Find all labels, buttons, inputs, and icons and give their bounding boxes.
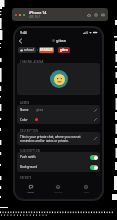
button[interactable]: Color: [17, 115, 100, 124]
staticText: 9:44: [20, 30, 27, 35]
button[interactable]: Chats: [17, 183, 44, 197]
staticText: gitea: [60, 48, 68, 52]
button[interactable]: gitea: [58, 47, 70, 53]
button[interactable]: Edit: [93, 108, 98, 113]
staticText: Color: [20, 118, 28, 122]
staticText: DEMO23: [40, 48, 53, 52]
staticText: Background: [20, 165, 38, 169]
button[interactable]: Screenshot: [101, 13, 105, 17]
staticText: Apps: [83, 190, 89, 193]
staticText: RECENTS: [20, 176, 32, 180]
button[interactable]: Rotate: [94, 13, 98, 17]
button[interactable]: Name: [17, 105, 100, 115]
staticText: iOS 16.1: [29, 15, 41, 19]
staticText: iPhone 14: [29, 10, 47, 15]
button[interactable]: Edit: [93, 136, 98, 141]
button[interactable]: Edit: [93, 117, 98, 122]
button[interactable]: Apps: [72, 183, 100, 197]
staticText: Chats: [27, 190, 34, 193]
button[interactable]: school: [18, 47, 36, 53]
staticText: Push notifs: [20, 155, 36, 159]
staticText: This is your private chat, where you can…: [20, 135, 92, 143]
staticText: Rooms: [54, 190, 63, 193]
staticText: ADMIN: [20, 101, 30, 105]
button[interactable]: Rooms: [44, 183, 72, 197]
staticText: DESCRIPTION: [20, 129, 39, 133]
staticText: CHANNEL AVATAR: [20, 60, 44, 64]
staticText: gitea: [36, 108, 44, 112]
staticText: gitea: [56, 38, 66, 43]
button[interactable]: This is your private chat, where you can…: [17, 132, 100, 145]
staticText: school: [24, 48, 34, 52]
button[interactable]: Back: [17, 37, 24, 44]
staticText: Name: [20, 108, 29, 112]
button[interactable]: DEMO23: [39, 47, 54, 53]
button[interactable]: Background: [17, 162, 100, 172]
button[interactable]: Home: [87, 13, 91, 17]
staticText: SUBSCRIPTION: [20, 149, 40, 153]
button[interactable]: Push notifs: [17, 152, 100, 162]
